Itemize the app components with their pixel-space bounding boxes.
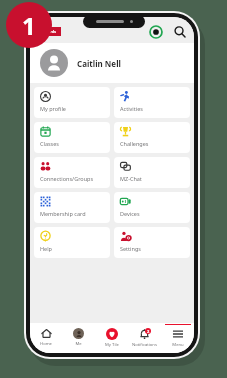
button[interactable]: Rewards	[33, 27, 61, 36]
staticText: Me	[75, 341, 82, 347]
button[interactable]: Settings	[114, 227, 190, 258]
staticText: My Tile	[105, 342, 119, 348]
staticText: MZ-Chat	[120, 175, 142, 182]
button[interactable]: Connections/Groups	[34, 157, 110, 188]
staticText: Devices	[120, 210, 140, 217]
button[interactable]: Caitlin Nell	[30, 43, 194, 83]
button[interactable]: Help	[34, 227, 110, 258]
button[interactable]: Classes	[34, 122, 110, 153]
button[interactable]: Search	[172, 24, 188, 40]
staticText: Classes	[40, 140, 59, 147]
staticText: My profile	[40, 105, 66, 112]
staticText: 2	[147, 329, 150, 334]
button[interactable]: 2	[128, 328, 161, 353]
staticText: Connections/Groups	[40, 175, 94, 182]
staticText: Settings	[120, 245, 141, 252]
button[interactable]: Devices	[114, 192, 190, 223]
staticText: 1	[22, 9, 36, 42]
button[interactable]: Menu	[161, 328, 194, 353]
staticText: Caitlin Nell	[77, 58, 121, 69]
staticText: Notifications	[132, 342, 157, 348]
button[interactable]: Scan	[148, 24, 164, 40]
button[interactable]: Membership card	[34, 192, 110, 223]
staticText: Activities	[120, 105, 143, 112]
staticText: Help	[40, 245, 52, 252]
button[interactable]: My profile	[34, 87, 110, 118]
button[interactable]: Me	[62, 328, 95, 353]
button[interactable]: Home	[30, 328, 62, 353]
button[interactable]: Activities	[114, 87, 190, 118]
staticText: Home	[40, 341, 52, 347]
staticText: Membership card	[40, 210, 86, 217]
button[interactable]: Challenges	[114, 122, 190, 153]
button[interactable]: MZ-Chat	[114, 157, 190, 188]
staticText: Menu	[172, 342, 184, 348]
button[interactable]: My Tile	[95, 328, 128, 353]
staticText: Challenges	[120, 140, 149, 147]
staticText: Rewards	[39, 29, 56, 34]
